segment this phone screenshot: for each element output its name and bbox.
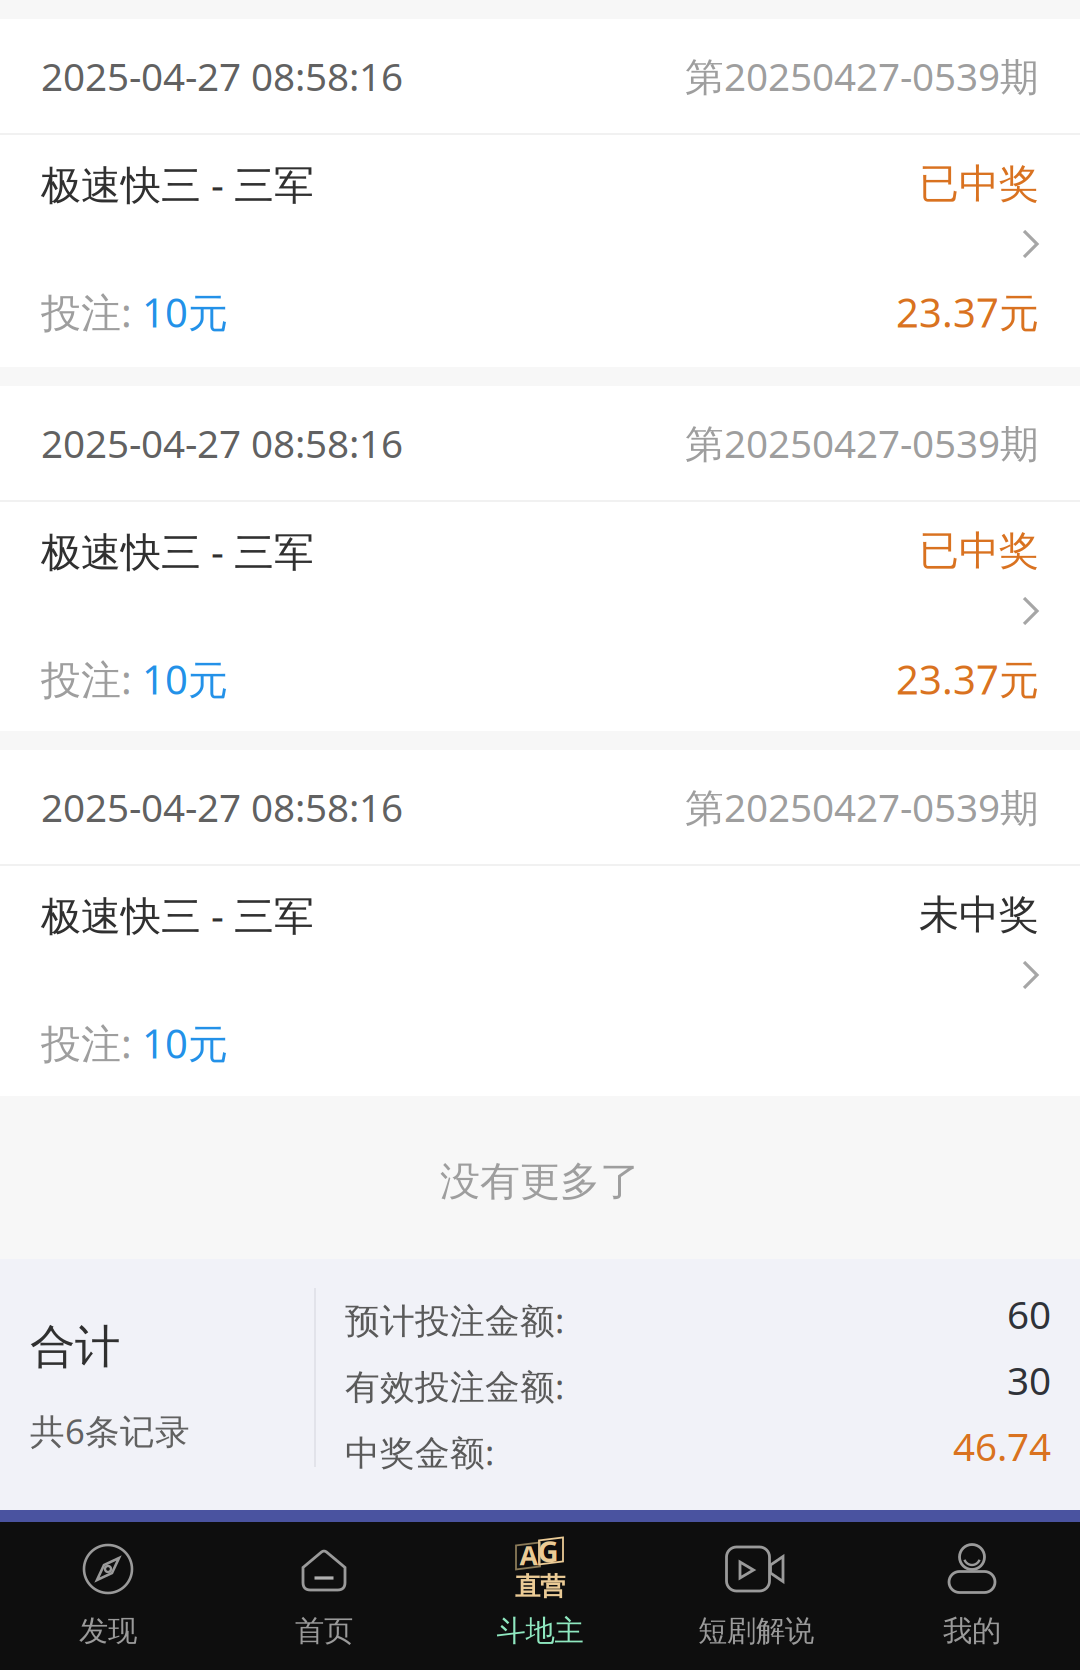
staticText: 已中奖 <box>919 159 1039 208</box>
staticText: 共6条记录 <box>30 1408 190 1454</box>
staticText: A <box>519 1537 537 1573</box>
staticText: 投注: <box>41 285 142 338</box>
staticText: 首页 <box>295 1613 353 1649</box>
button[interactable]: 我的 <box>864 1522 1080 1670</box>
staticText: 极速快三 - 三军 <box>41 888 314 941</box>
staticText: 没有更多了 <box>440 1157 640 1206</box>
staticText: 60 <box>1007 1288 1051 1340</box>
staticText: 未中奖 <box>919 890 1039 939</box>
staticText: 2025-04-27 08:58:16 <box>41 50 403 102</box>
staticText: 10元 <box>142 285 228 338</box>
button[interactable]: 首页 <box>216 1522 432 1670</box>
staticText: 投注: <box>41 652 142 705</box>
staticText: 极速快三 - 三军 <box>41 524 314 577</box>
staticText: 30 <box>1007 1354 1051 1406</box>
button[interactable]: 极速快三 - 三军 已中奖 23.37元 <box>0 19 1080 367</box>
button[interactable]: 极速快三 - 三军 未中奖 <box>0 750 1080 1096</box>
staticText: 中奖金额: <box>345 1429 494 1475</box>
button[interactable]: A <box>432 1522 648 1670</box>
staticText: 46.74 <box>953 1420 1051 1472</box>
staticText: 短剧解说 <box>698 1613 814 1649</box>
staticText: 发现 <box>79 1613 137 1649</box>
button[interactable]: 发现 <box>0 1522 216 1670</box>
staticText: 我的 <box>943 1613 1001 1649</box>
button[interactable]: 短剧解说 <box>648 1522 864 1670</box>
staticText: 2025-04-27 08:58:16 <box>41 781 403 833</box>
staticText: 第20250427-0539期 <box>685 417 1039 469</box>
staticText: 投注: <box>41 1016 142 1069</box>
staticText: 直营 <box>515 1571 565 1602</box>
staticText: 预计投注金额: <box>345 1297 564 1343</box>
staticText: 第20250427-0539期 <box>685 781 1039 833</box>
staticText: 23.37元 <box>896 652 1039 705</box>
staticText: 有效投注金额: <box>345 1363 564 1409</box>
button[interactable]: 极速快三 - 三军 已中奖 23.37元 <box>0 386 1080 731</box>
staticText: 2025-04-27 08:58:16 <box>41 417 403 469</box>
staticText: G <box>537 1531 558 1570</box>
staticText: 10元 <box>142 652 228 705</box>
staticText: 极速快三 - 三军 <box>41 157 314 210</box>
staticText: 第20250427-0539期 <box>685 50 1039 102</box>
staticText: 已中奖 <box>919 526 1039 575</box>
staticText: 10元 <box>142 1016 228 1069</box>
staticText: 合计 <box>30 1319 120 1375</box>
staticText: 斗地主 <box>496 1613 583 1649</box>
staticText: 23.37元 <box>896 285 1039 338</box>
